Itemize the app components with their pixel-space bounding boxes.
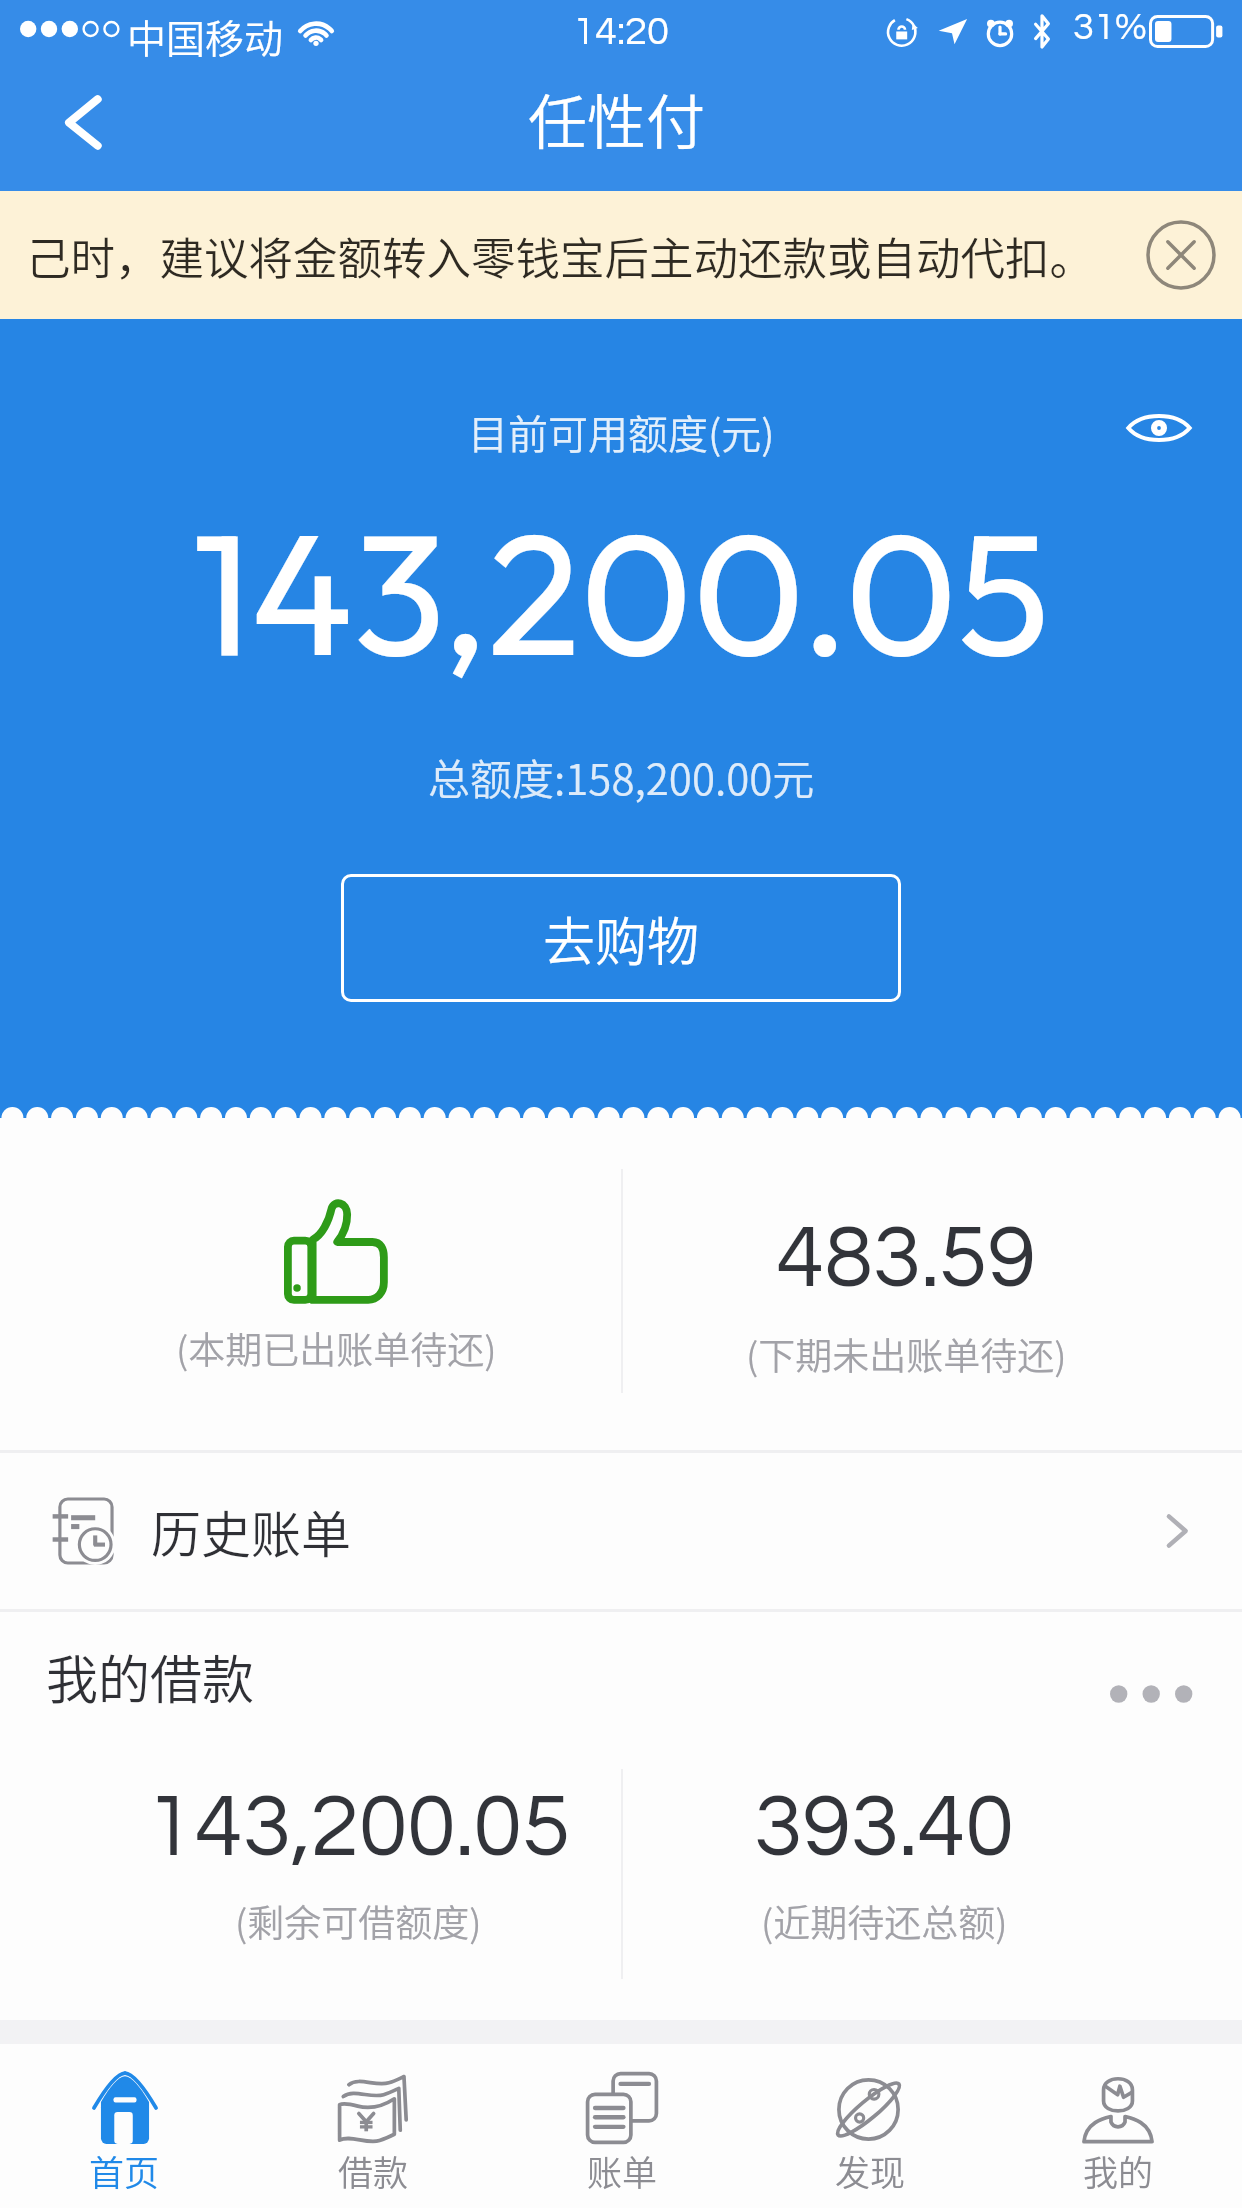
staticText: (本期已出账单待还) bbox=[176, 1321, 497, 1375]
button[interactable]: 账单 bbox=[498, 2044, 746, 2208]
staticText: 我的 bbox=[1083, 2145, 1154, 2196]
staticText: 我的借款 bbox=[46, 1639, 255, 1714]
staticText: 143,200.05 bbox=[146, 1783, 571, 1874]
staticText: 总额度:158,200.00元 bbox=[428, 746, 815, 807]
staticText: 历史账单 bbox=[151, 1495, 351, 1567]
staticText: 己时，建议将金额转入零钱宝后主动还款或自动代扣。 bbox=[26, 223, 1095, 287]
button[interactable]: More bbox=[1090, 1659, 1210, 1729]
staticText: 483.59 bbox=[776, 1214, 1036, 1305]
staticText: 首页 bbox=[89, 2145, 160, 2196]
staticText: 目前可用额度(元) bbox=[468, 403, 775, 461]
staticText: 393.40 bbox=[754, 1783, 1014, 1874]
button[interactable]: Close bbox=[1142, 216, 1220, 294]
staticText: 账单 bbox=[587, 2145, 658, 2196]
button[interactable]: 去购物 bbox=[341, 874, 901, 1002]
staticText: 31% bbox=[1073, 8, 1147, 47]
staticText: 14:20 bbox=[573, 11, 670, 52]
button[interactable]: 首页 bbox=[0, 2044, 249, 2208]
button[interactable]: 借款 bbox=[249, 2044, 498, 2208]
staticText: 任性付 bbox=[528, 76, 706, 161]
button[interactable]: Toggle amount visibility bbox=[1126, 411, 1192, 445]
staticText: (下期未出账单待还) bbox=[746, 1327, 1067, 1381]
button[interactable]: 历史账单 bbox=[0, 1453, 1242, 1609]
staticText: 发现 bbox=[835, 2145, 906, 2196]
button[interactable]: Back bbox=[48, 81, 118, 151]
staticText: (近期待还总额) bbox=[761, 1894, 1008, 1948]
button[interactable]: 我的 bbox=[994, 2044, 1242, 2208]
staticText: (剩余可借额度) bbox=[235, 1894, 482, 1948]
staticText: 中国移动 bbox=[127, 8, 284, 64]
staticText: 143,200.05 bbox=[192, 484, 1050, 699]
staticText: 去购物 bbox=[543, 901, 700, 976]
button[interactable]: 发现 bbox=[746, 2044, 994, 2208]
staticText: 借款 bbox=[338, 2145, 409, 2196]
